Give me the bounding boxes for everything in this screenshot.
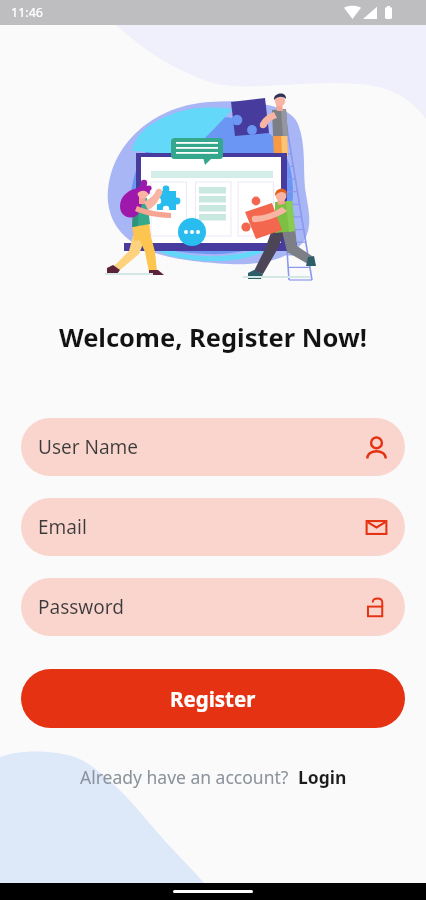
button[interactable]: Password bbox=[21, 578, 405, 636]
button[interactable]: Register bbox=[21, 669, 405, 728]
button[interactable]: Email bbox=[21, 498, 405, 556]
staticText: Welcome, Register Now! bbox=[0, 320, 426, 355]
button[interactable]: Login bbox=[298, 765, 347, 789]
staticText: Email bbox=[38, 514, 365, 540]
staticText: Register bbox=[170, 685, 256, 713]
staticText: 11:46 bbox=[11, 4, 43, 21]
staticText: User Name bbox=[38, 434, 365, 460]
staticText: Password bbox=[38, 594, 365, 620]
button[interactable]: User Name bbox=[21, 418, 405, 476]
staticText: Login bbox=[298, 765, 347, 789]
staticText: Already have an account? bbox=[80, 765, 298, 789]
